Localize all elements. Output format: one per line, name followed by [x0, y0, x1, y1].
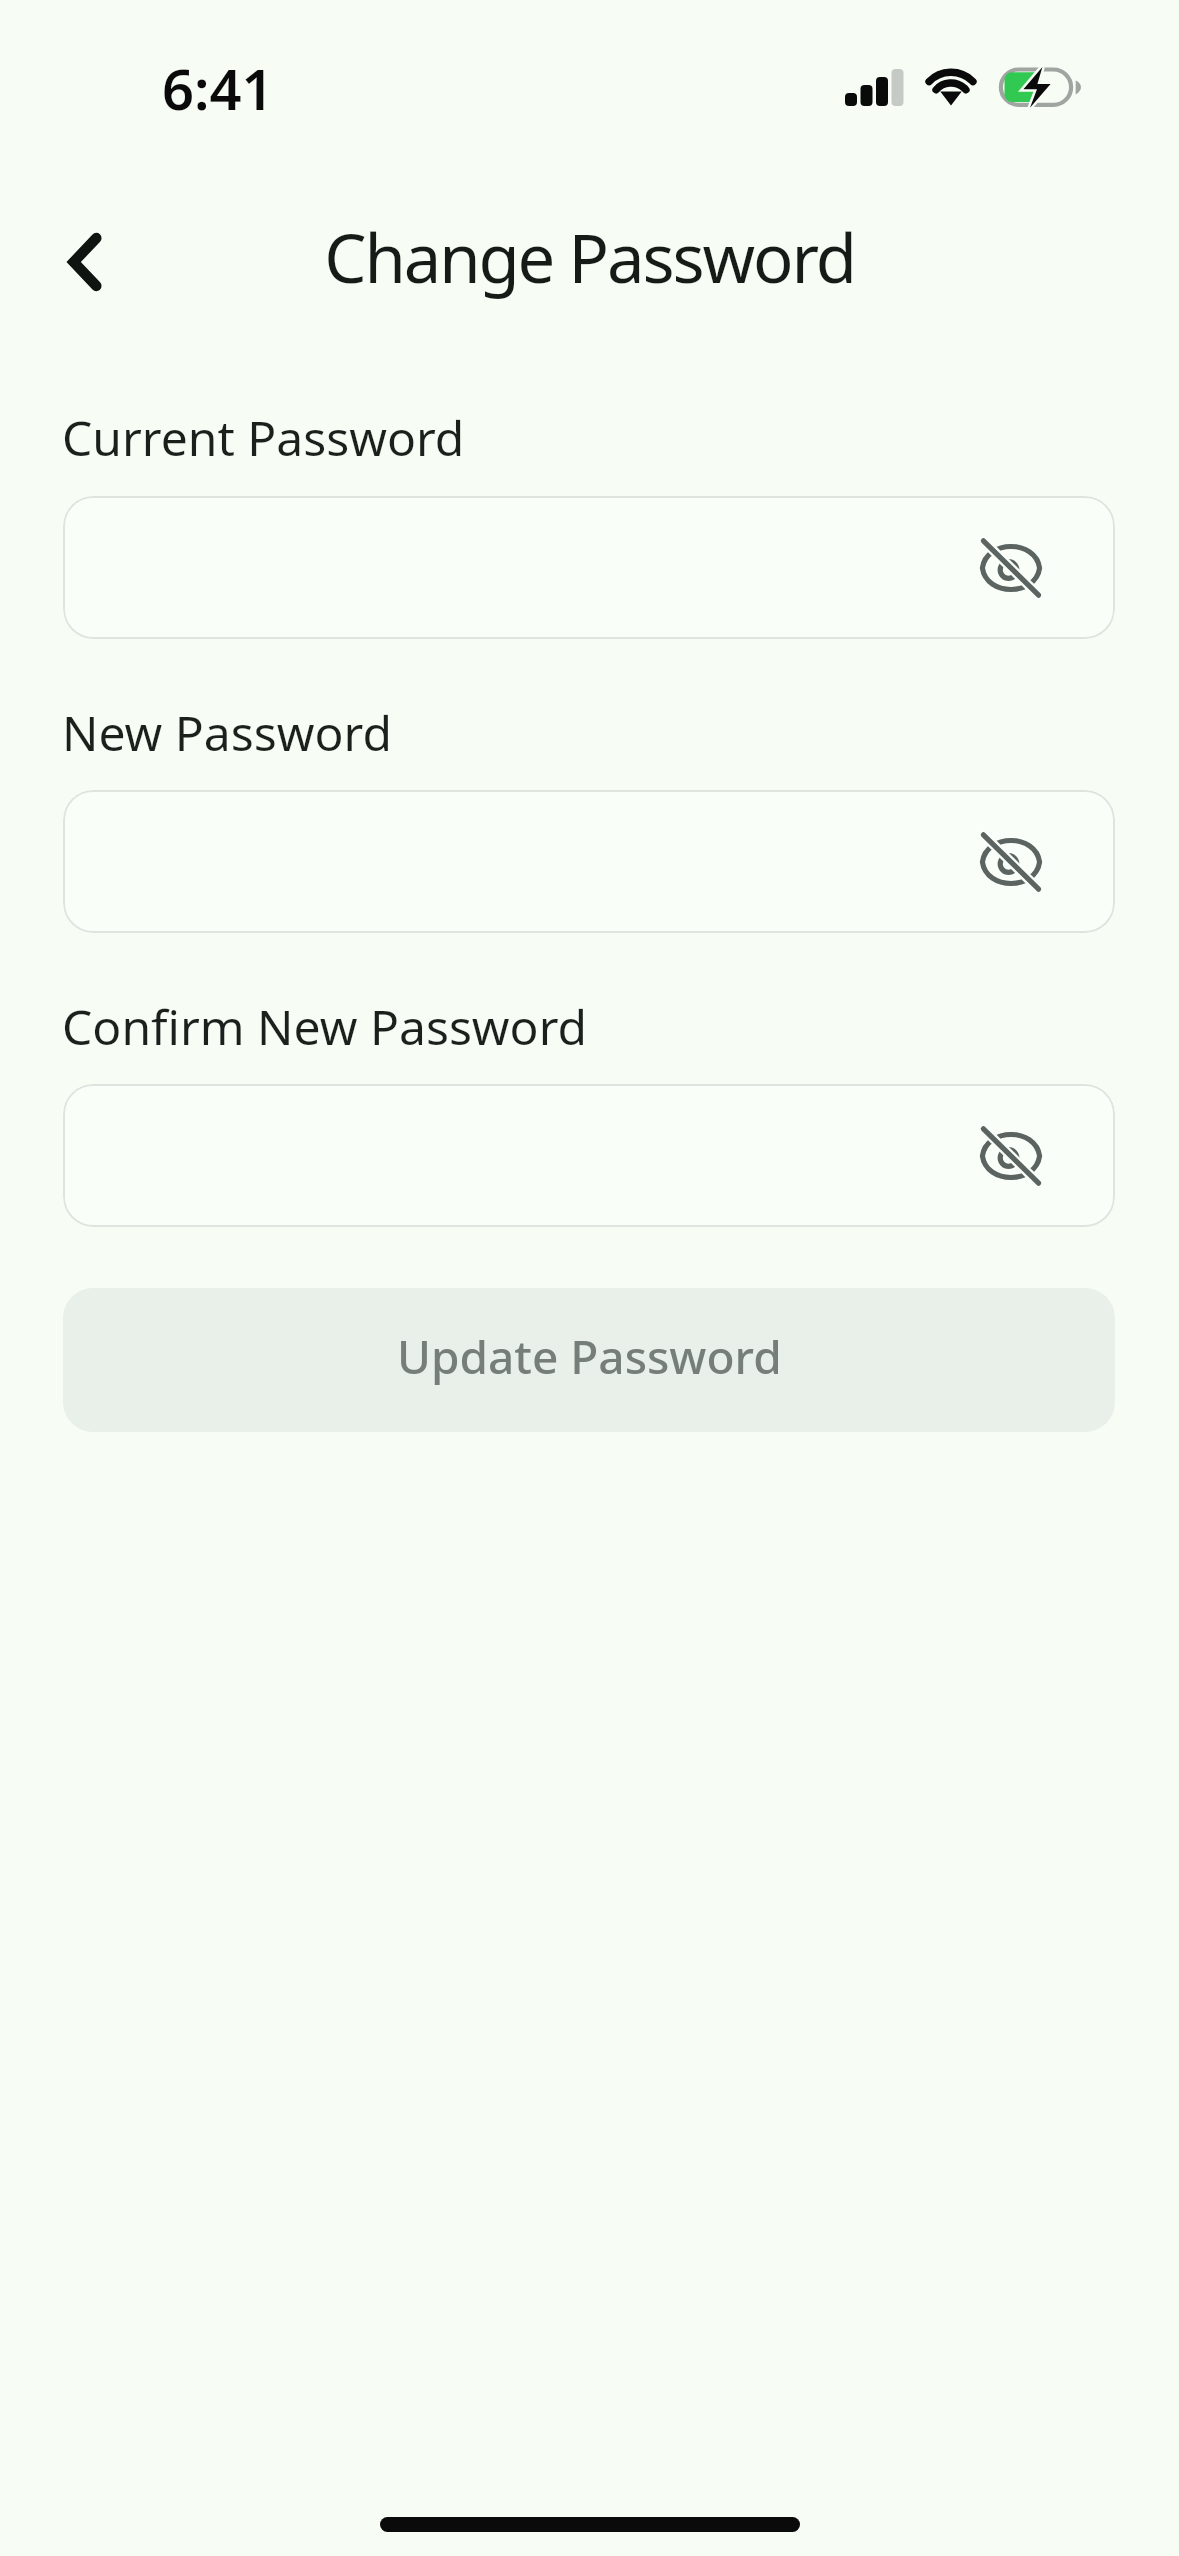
staticText: Change Password	[0, 211, 1179, 302]
button[interactable]: Show password	[63, 790, 1115, 933]
button[interactable]: Show password	[967, 1112, 1055, 1200]
button[interactable]: Show password	[63, 496, 1115, 639]
button[interactable]: Show password	[63, 1084, 1115, 1227]
button[interactable]: Update Password	[63, 1288, 1115, 1432]
staticText: Current Password	[62, 405, 465, 470]
staticText: Update Password	[397, 1325, 782, 1388]
button[interactable]: Back	[41, 218, 129, 306]
button[interactable]: Show password	[967, 524, 1055, 612]
staticText: Confirm New Password	[62, 994, 588, 1059]
staticText: 6:41	[162, 50, 274, 126]
staticText: New Password	[62, 700, 392, 765]
button[interactable]: Show password	[967, 818, 1055, 906]
